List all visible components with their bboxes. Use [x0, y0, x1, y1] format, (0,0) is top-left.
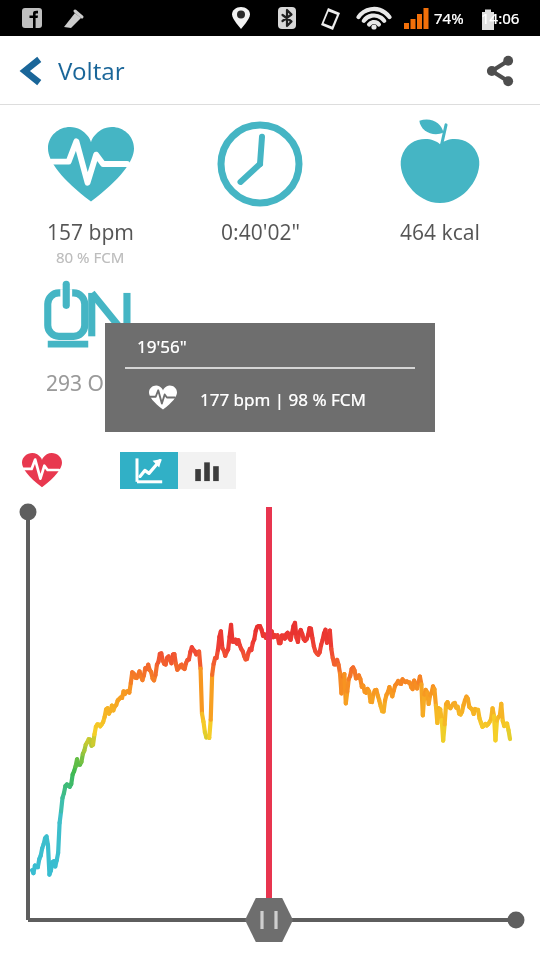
button[interactable]: Line chart: [120, 452, 178, 489]
staticText: 80 % FCM: [56, 247, 125, 267]
staticText: 74%: [434, 8, 464, 28]
staticText: 157 bpm: [47, 218, 134, 247]
staticText: 14:06: [481, 8, 520, 28]
button[interactable]: Bar chart: [178, 452, 236, 489]
staticText: 464 kcal: [400, 218, 480, 247]
button[interactable]: Voltar: [0, 46, 137, 95]
staticText: 177 bpm | 98 % FCM: [200, 388, 367, 411]
staticText: 0:40'02": [221, 218, 300, 247]
staticText: 19'56": [137, 335, 187, 358]
staticText: Voltar: [58, 54, 125, 87]
button[interactable]: Share: [474, 45, 526, 97]
staticText: 293 ON: [46, 369, 120, 398]
